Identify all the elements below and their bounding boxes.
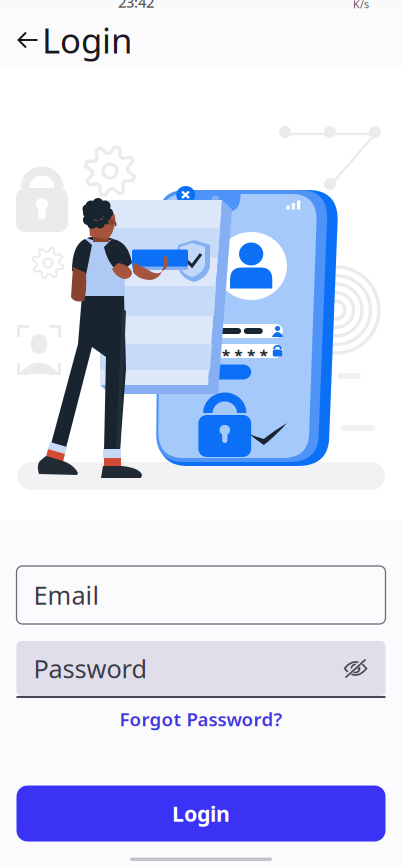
staticText: Login [172, 799, 230, 828]
staticText: Login [42, 17, 132, 63]
button[interactable]: Forgot Password? [0, 709, 402, 729]
staticText: K/s [353, 0, 369, 11]
button[interactable]: Login [16, 785, 385, 841]
staticText: Email [33, 578, 99, 612]
button[interactable]: Back [5, 18, 51, 62]
staticText: Forgot Password? [119, 707, 282, 731]
staticText: * * * * * [211, 345, 267, 365]
staticText: Password [33, 652, 147, 685]
button[interactable]: Password [16, 641, 385, 698]
staticText: 23:42 [118, 0, 154, 12]
button[interactable]: Email [16, 566, 385, 624]
